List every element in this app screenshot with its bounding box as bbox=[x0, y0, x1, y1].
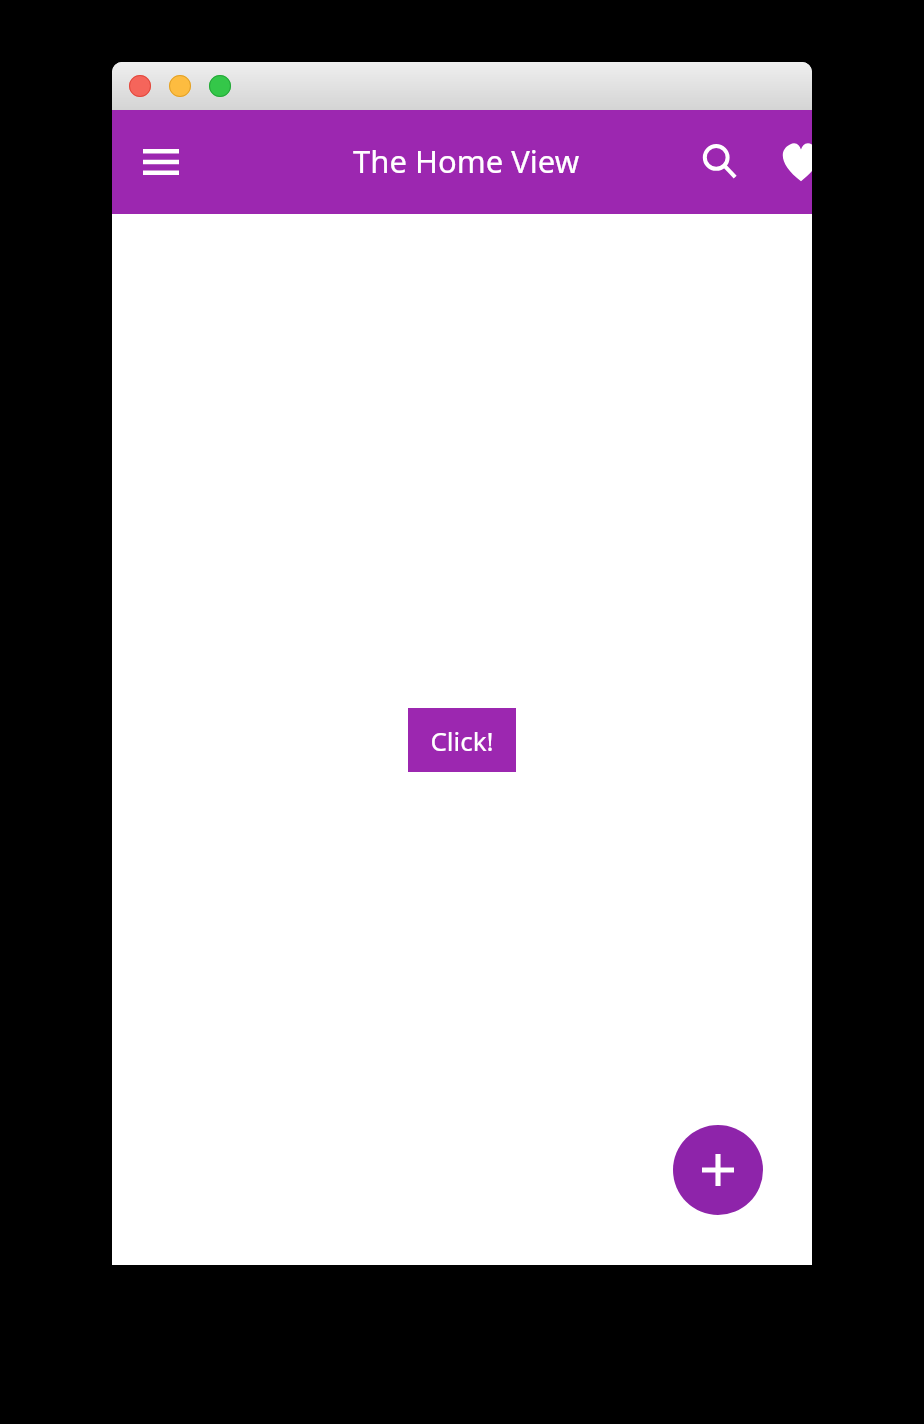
button[interactable]: Click! bbox=[408, 708, 516, 772]
button[interactable]: Add bbox=[673, 1125, 763, 1215]
staticText: Click! bbox=[430, 723, 494, 758]
button[interactable]: Search bbox=[692, 134, 748, 190]
button[interactable]: Favorite bbox=[773, 134, 812, 190]
staticText: The Home View bbox=[353, 140, 580, 182]
button[interactable]: Menu bbox=[133, 134, 189, 190]
